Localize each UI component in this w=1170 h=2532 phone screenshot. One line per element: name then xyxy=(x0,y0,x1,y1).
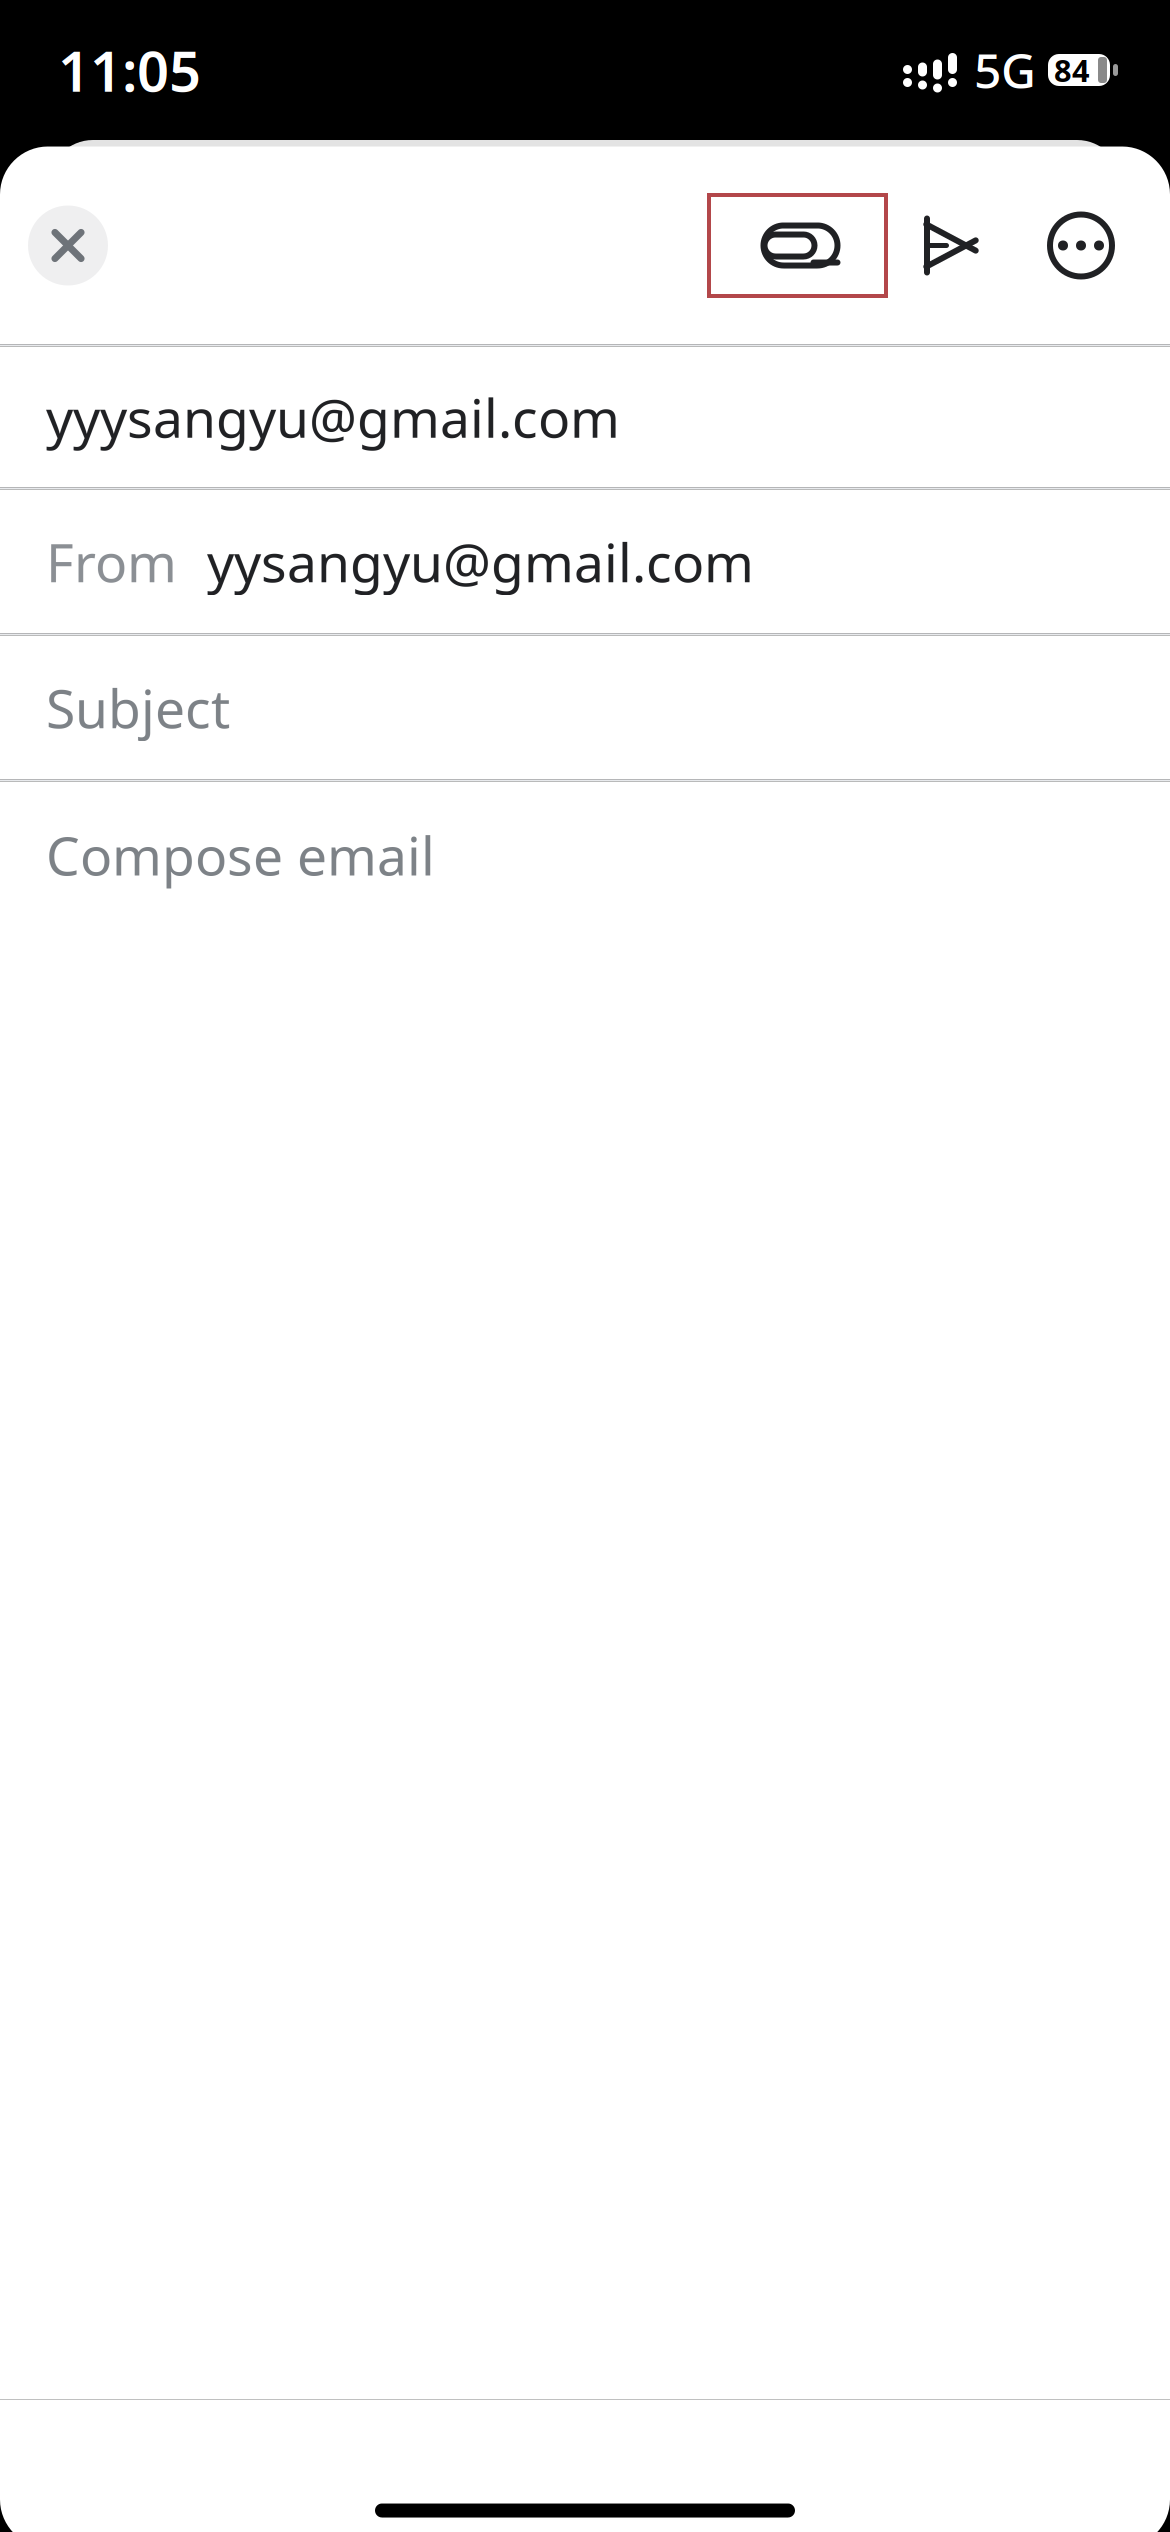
staticText: yysangyu@gmail.com xyxy=(207,526,754,597)
staticText: 5G xyxy=(974,38,1036,102)
staticText: 11:05 xyxy=(58,33,201,107)
button[interactable]: Close xyxy=(0,170,126,320)
staticText: yyysangyu@gmail.com xyxy=(46,382,620,452)
staticText: 84 xyxy=(1054,50,1090,90)
staticText: Compose email xyxy=(46,819,435,890)
button[interactable]: More options xyxy=(1016,170,1146,320)
button[interactable]: Send xyxy=(886,170,1016,320)
button[interactable]: Subject xyxy=(0,635,1170,779)
button[interactable]: yyysangyu@gmail.com xyxy=(0,346,1170,487)
button[interactable]: From xyxy=(0,489,1170,633)
staticText: From xyxy=(46,526,177,597)
button[interactable]: Attach file xyxy=(709,195,886,296)
button[interactable]: Compose email xyxy=(0,781,1170,2399)
staticText: Subject xyxy=(46,672,230,743)
